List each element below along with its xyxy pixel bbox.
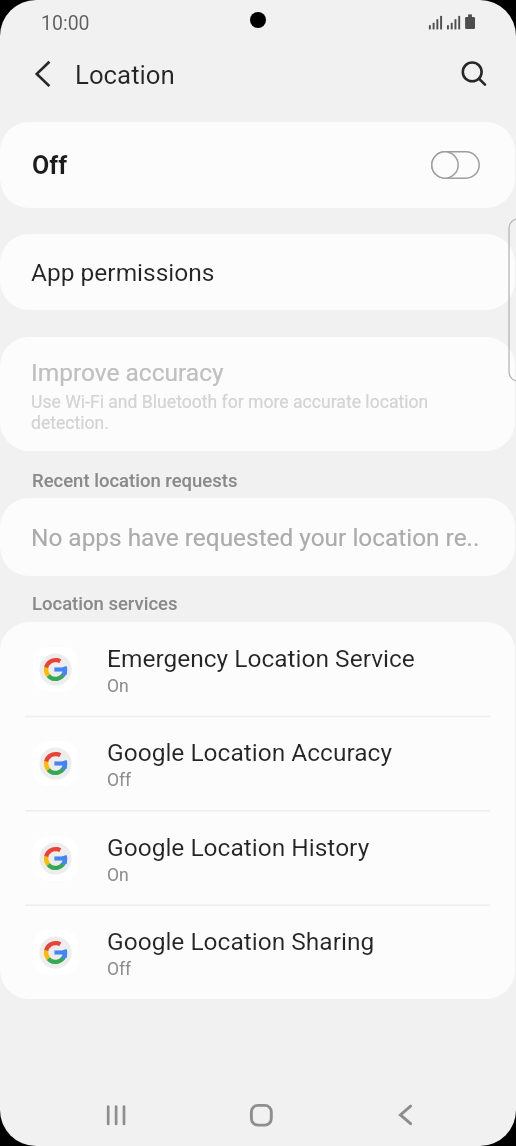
staticText: On <box>107 676 129 697</box>
staticText: No apps have requested your location re.… <box>31 523 480 552</box>
button[interactable]: Home <box>232 1086 288 1142</box>
staticText: Google Location Sharing <box>107 927 375 956</box>
staticText: Use Wi-Fi and Bluetooth for more accurat… <box>31 392 457 434</box>
button[interactable]: Google Location Accuracy <box>0 716 515 810</box>
staticText: 10:00 <box>41 12 90 35</box>
button[interactable]: Back <box>377 1086 433 1142</box>
staticText: Off <box>107 959 132 980</box>
staticText: Location services <box>32 593 178 615</box>
button[interactable]: Emergency Location Service <box>0 622 515 716</box>
staticText: Emergency Location Service <box>107 644 415 673</box>
button[interactable]: Recent apps <box>88 1086 144 1142</box>
button[interactable]: Navigate up <box>18 50 66 98</box>
staticText: Off <box>107 770 132 791</box>
button[interactable]: Google Location History <box>0 811 515 905</box>
staticText: Off <box>32 151 431 180</box>
staticText: On <box>107 865 129 886</box>
button[interactable]: Search <box>449 50 495 96</box>
button[interactable]: Google Location Sharing <box>0 905 515 999</box>
button[interactable]: Off <box>0 122 515 208</box>
staticText: Recent location requests <box>32 470 238 492</box>
staticText: Google Location History <box>107 833 370 862</box>
staticText: Google Location Accuracy <box>107 738 392 767</box>
staticText: Location <box>75 60 175 90</box>
button[interactable]: App permissions <box>0 234 515 310</box>
staticText: Improve accuracy <box>31 358 224 387</box>
staticText: App permissions <box>31 258 215 287</box>
